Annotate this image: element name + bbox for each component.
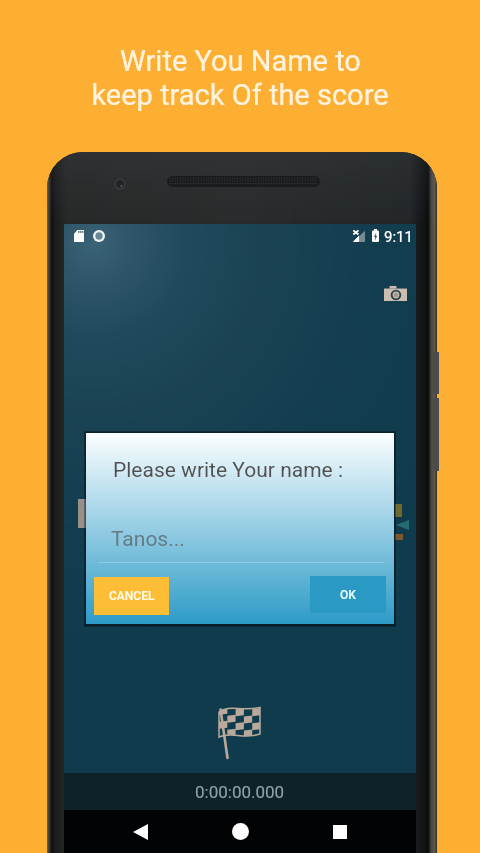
staticText: Write You Name to	[120, 44, 361, 78]
staticText: 9:11	[384, 228, 413, 246]
button[interactable]: Camera	[382, 282, 408, 304]
button[interactable]: Home	[216, 810, 264, 853]
button[interactable]: CANCEL	[94, 577, 169, 615]
button[interactable]: OK	[310, 576, 386, 613]
staticText: CANCEL	[109, 589, 155, 603]
staticText: 0:00:00.000	[195, 782, 285, 802]
staticText: Please write Your name :	[113, 458, 344, 483]
staticText: Tanos...	[111, 527, 185, 552]
button[interactable]: Recents	[316, 810, 364, 853]
staticText: keep track Of the score	[91, 78, 389, 112]
button[interactable]: Back	[116, 810, 164, 853]
staticText: OK	[340, 588, 356, 602]
